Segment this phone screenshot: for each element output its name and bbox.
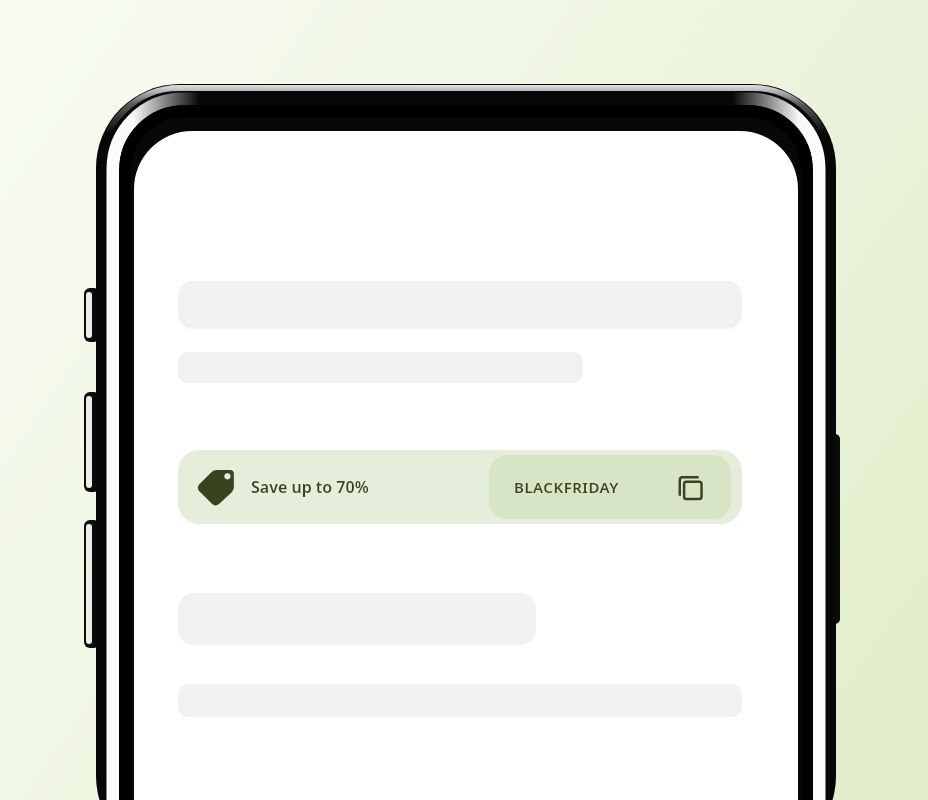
staticText: Save up to 70%: [251, 476, 369, 498]
button[interactable]: Copy promo code: [676, 473, 705, 502]
button[interactable]: BLACKFRIDAY: [489, 455, 731, 519]
button[interactable]: Save up to 70%: [178, 450, 742, 524]
staticText: BLACKFRIDAY: [514, 477, 619, 497]
